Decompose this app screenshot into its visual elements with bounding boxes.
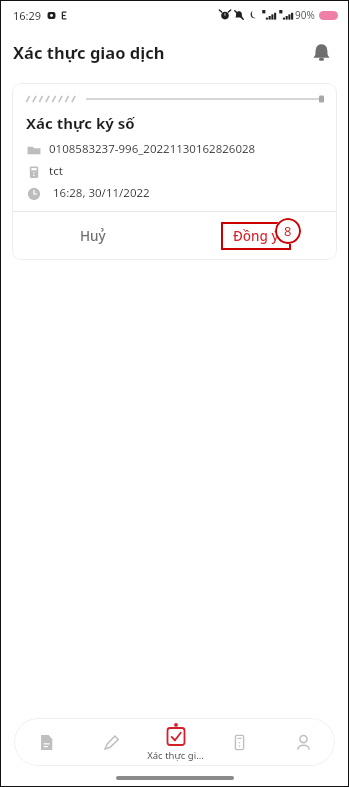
staticText: Đồng ý — [233, 227, 279, 245]
button[interactable]: Notifications — [303, 34, 339, 70]
button[interactable]: Huỷ — [12, 212, 174, 260]
staticText: 16:28, 30/11/2022 — [53, 185, 150, 201]
staticText: 8 — [284, 222, 292, 240]
staticText: 0108583237-996_20221130162826028 — [49, 141, 256, 157]
button[interactable]: Documents — [14, 718, 79, 766]
staticText: Xác thực ký số — [26, 113, 135, 133]
button[interactable]: Xác thực ký số — [12, 83, 337, 260]
staticText: Huỷ — [80, 227, 106, 245]
button[interactable]: Devices — [207, 718, 271, 766]
button[interactable]: Đồng ý — [174, 212, 337, 260]
staticText: Xác thực giao dịch — [13, 41, 165, 63]
staticText: 90% — [295, 8, 315, 22]
staticText: tct — [49, 163, 63, 179]
button[interactable]: Sign — [79, 718, 143, 766]
button[interactable]: Profile — [271, 718, 335, 766]
button[interactable]: Xác thực gi... — [143, 718, 207, 766]
staticText: 16:29 — [13, 8, 42, 23]
staticText: Xác thực gi... — [147, 749, 204, 762]
